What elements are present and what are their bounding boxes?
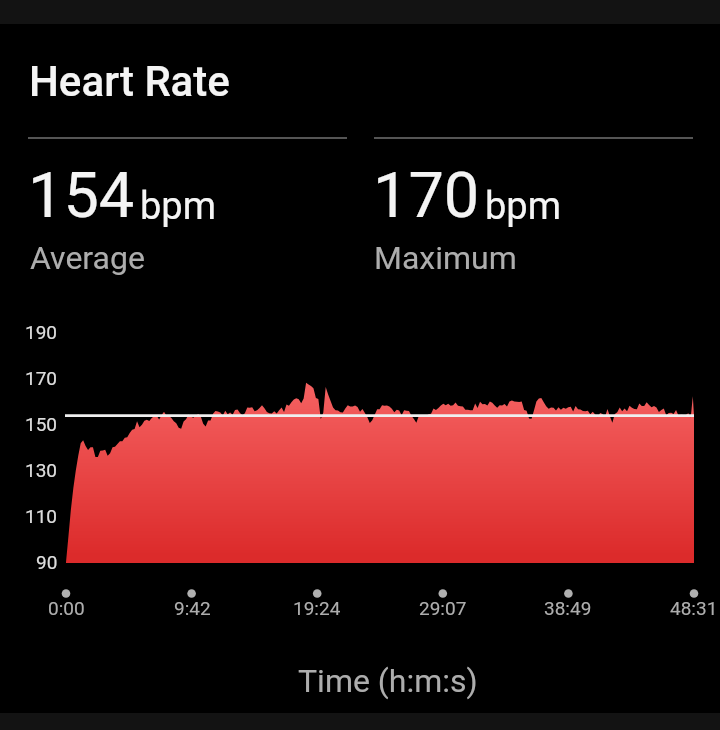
button[interactable]: 154 bbox=[24, 128, 348, 286]
button[interactable]: 170 bbox=[370, 128, 694, 286]
staticText: bpm bbox=[140, 184, 216, 229]
staticText: bpm bbox=[485, 184, 561, 229]
staticText: 110 bbox=[25, 505, 58, 527]
staticText: 0:00 bbox=[48, 597, 85, 619]
staticText: 170 bbox=[373, 159, 480, 233]
staticText: 190 bbox=[25, 321, 58, 343]
staticText: Maximum bbox=[374, 239, 517, 277]
staticText: 130 bbox=[25, 459, 58, 481]
staticText: 29:07 bbox=[419, 597, 467, 619]
staticText: 9:42 bbox=[174, 597, 211, 619]
button[interactable]: Heart Rate bbox=[18, 45, 252, 118]
staticText: Average bbox=[30, 239, 145, 277]
staticText: 154 bbox=[28, 159, 135, 233]
button[interactable]: Heart rate chart bbox=[0, 300, 720, 630]
staticText: 170 bbox=[25, 367, 58, 389]
staticText: 48:31 bbox=[670, 597, 718, 619]
staticText: 19:24 bbox=[293, 597, 341, 619]
staticText: Time (h:m:s) bbox=[298, 662, 478, 700]
staticText: 38:49 bbox=[544, 597, 592, 619]
staticText: 90 bbox=[36, 551, 58, 573]
staticText: 150 bbox=[25, 413, 58, 435]
staticText: Heart Rate bbox=[29, 57, 230, 106]
